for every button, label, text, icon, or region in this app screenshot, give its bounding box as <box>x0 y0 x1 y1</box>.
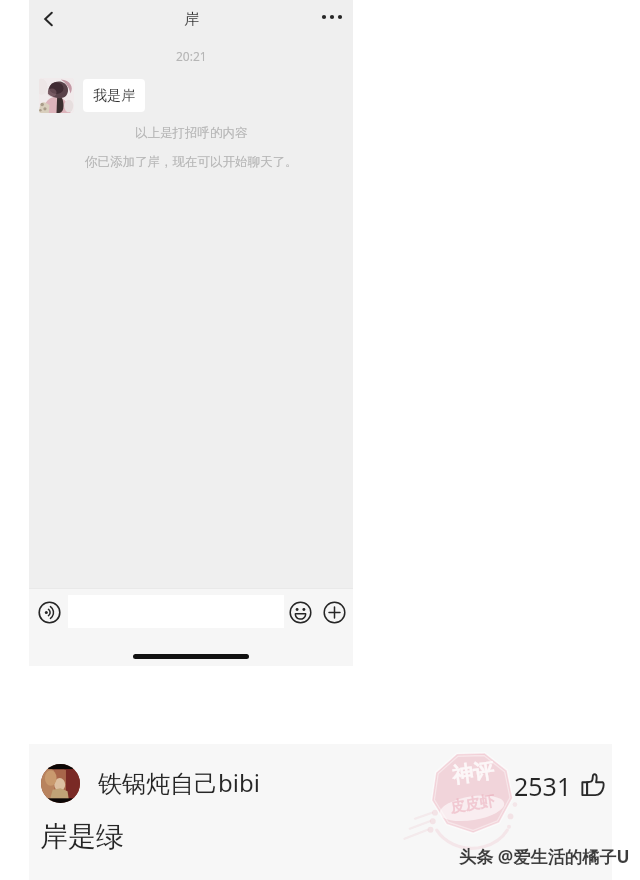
staticText: 铁锅炖自己bibi <box>98 766 260 799</box>
button[interactable]: Emoji <box>289 601 312 624</box>
staticText: 你已添加了岸，现在可以开始聊天了。 <box>85 154 298 170</box>
button[interactable]: 岸是绿 <box>40 819 124 854</box>
staticText: 头条 @爱生活的橘子U <box>459 845 630 868</box>
button[interactable]: 铁锅炖自己bibi <box>35 758 295 808</box>
staticText: 2531 <box>514 769 572 803</box>
other: Like <box>579 771 607 799</box>
button[interactable]: More options <box>317 2 347 32</box>
staticText: 20:21 <box>176 48 207 64</box>
staticText: 以上是打招呼的内容 <box>135 125 248 141</box>
staticText: 神评 <box>450 757 496 789</box>
button[interactable]: Add attachment <box>323 601 346 624</box>
button[interactable]: Back <box>33 5 63 35</box>
staticText: 岸 <box>184 10 199 29</box>
button[interactable]: 2531 <box>507 760 605 806</box>
staticText: 皮皮虾 <box>449 792 496 817</box>
button[interactable]: Voice message <box>38 601 61 624</box>
staticText: 我是岸 <box>93 87 135 105</box>
